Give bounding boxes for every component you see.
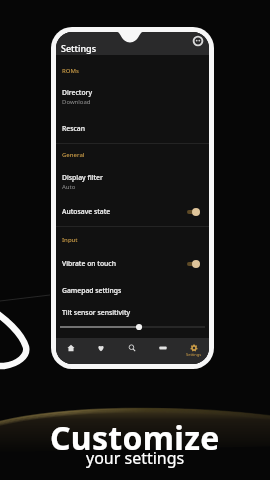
button[interactable]: Rescan <box>56 124 209 133</box>
button[interactable]: Tilt sensor sensitivity <box>56 308 209 317</box>
staticText: Settings <box>186 352 202 357</box>
staticText: your settings <box>86 447 185 469</box>
button[interactable]: Settings <box>178 338 209 364</box>
button[interactable]: Library <box>147 338 178 364</box>
staticText: General <box>62 151 85 159</box>
staticText: Autosave state <box>62 207 172 216</box>
button[interactable]: Display filter <box>56 173 209 191</box>
staticText: Rescan <box>62 124 85 133</box>
button[interactable]: Directory <box>56 88 209 106</box>
button[interactable]: Tilt sensor sensitivity slider <box>56 323 209 331</box>
staticText: Download <box>62 98 91 106</box>
staticText: Settings <box>61 42 97 54</box>
button[interactable]: Search <box>116 338 147 364</box>
staticText: ROMs <box>62 67 79 75</box>
staticText: Customize <box>50 416 220 460</box>
staticText: Gamepad settings <box>62 286 122 295</box>
button[interactable]: Home <box>56 338 86 364</box>
staticText: Directory <box>62 88 93 97</box>
button[interactable]: Vibrate on touch <box>56 259 209 268</box>
button[interactable]: Gamepad settings <box>56 286 209 295</box>
staticText: Input <box>62 236 78 244</box>
staticText: Auto <box>62 183 76 191</box>
button[interactable]: Autosave state <box>56 207 209 216</box>
button[interactable]: Favorites <box>86 338 116 364</box>
staticText: Vibrate on touch <box>62 259 172 268</box>
staticText: Display filter <box>62 173 103 182</box>
button[interactable]: About <box>192 35 203 46</box>
staticText: Tilt sensor sensitivity <box>62 308 131 317</box>
